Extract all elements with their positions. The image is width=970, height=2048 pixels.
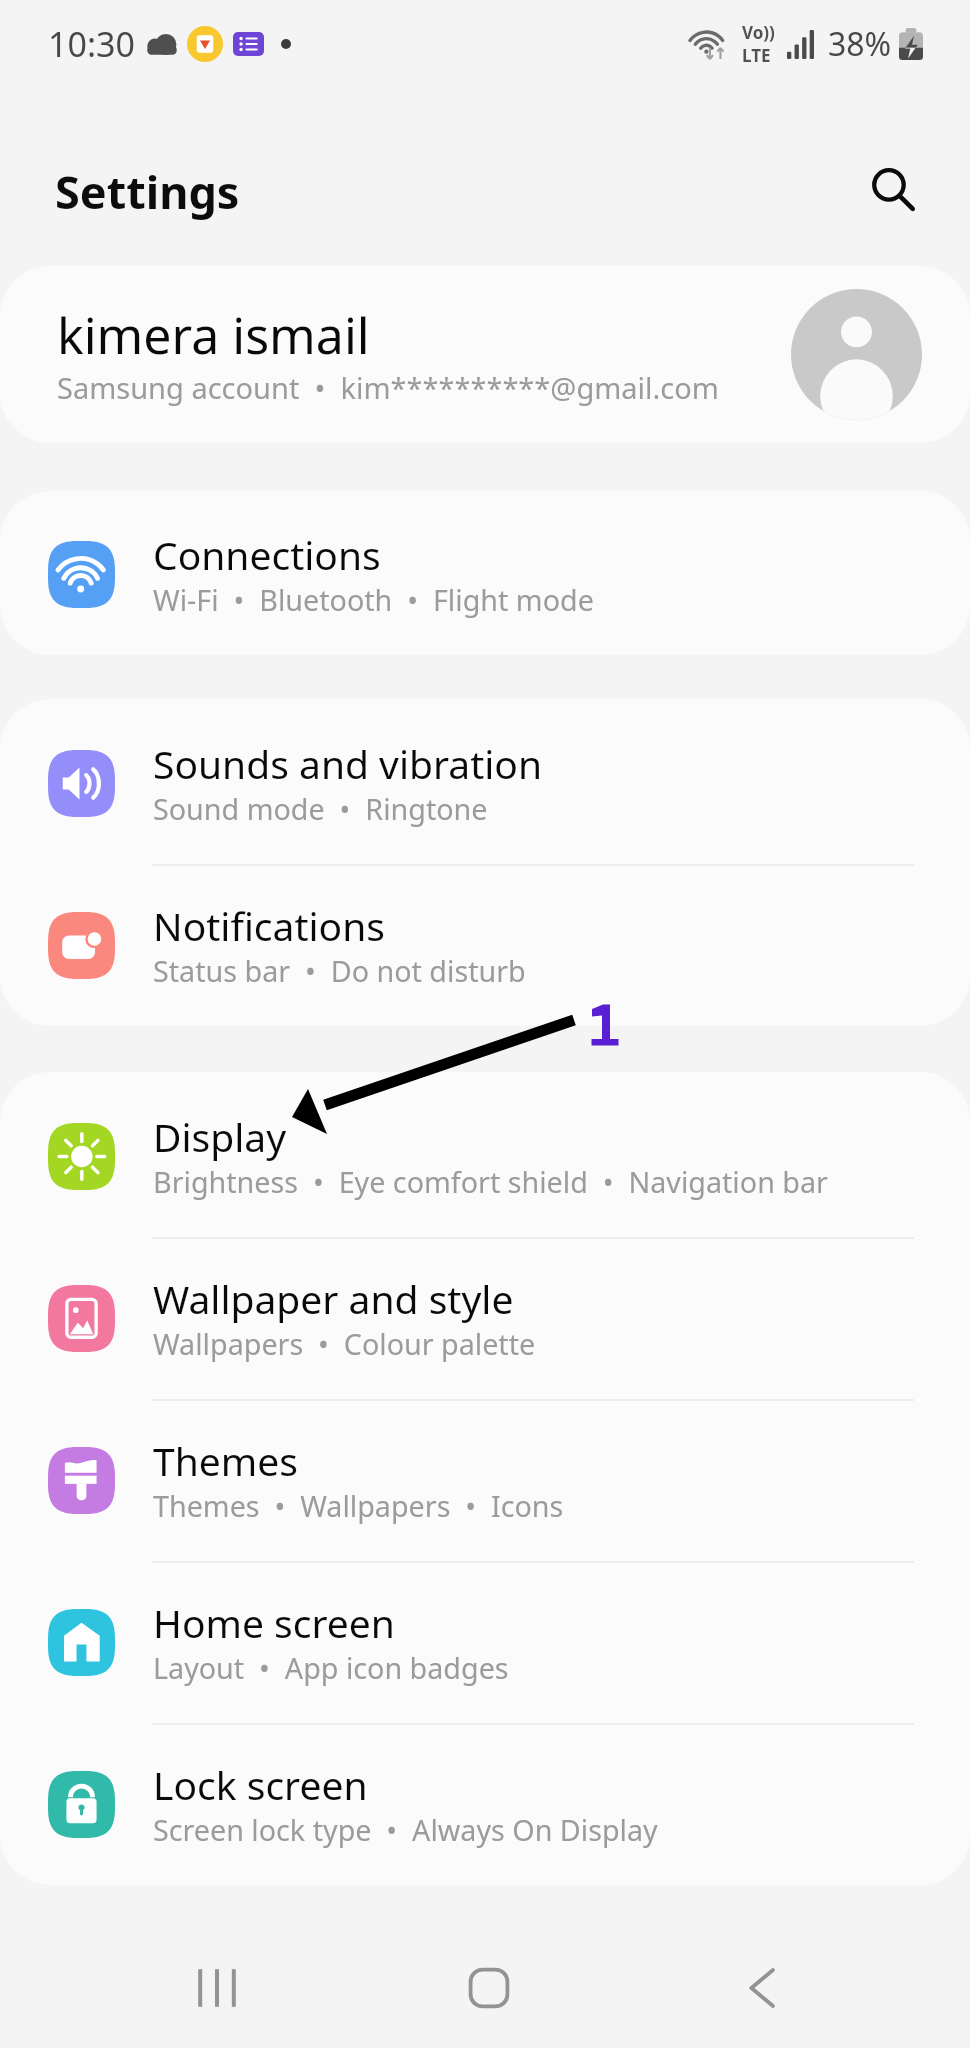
staticText: Connections: [153, 528, 381, 581]
staticText: Home screen: [153, 1596, 395, 1649]
staticText: kimera ismail: [57, 301, 370, 369]
button[interactable]: Connections: [0, 493, 970, 655]
staticText: Brightness • Eye comfort shield • Naviga…: [153, 1162, 828, 1201]
button[interactable]: Lock screen: [0, 1723, 970, 1885]
button[interactable]: Home: [409, 1949, 569, 2027]
button[interactable]: Themes: [0, 1399, 970, 1561]
staticText: 10:30: [48, 21, 135, 67]
staticText: Wi-Fi • Bluetooth • Flight mode: [153, 580, 594, 619]
button[interactable]: Notifications: [0, 864, 970, 1026]
staticText: Screen lock type • Always On Display: [153, 1810, 658, 1849]
staticText: Layout • App icon badges: [153, 1648, 509, 1687]
staticText: 38%: [828, 22, 892, 66]
staticText: Themes: [153, 1434, 298, 1487]
button[interactable]: Sounds and vibration: [0, 702, 970, 864]
staticText: Sound mode • Ringtone: [153, 789, 488, 828]
button[interactable]: Display: [0, 1075, 970, 1237]
button[interactable]: Wallpaper and style: [0, 1237, 970, 1399]
staticText: Lock screen: [153, 1758, 368, 1811]
staticText: Display: [153, 1110, 287, 1163]
button[interactable]: Search: [846, 143, 942, 239]
staticText: Settings: [55, 161, 240, 222]
staticText: Wallpaper and style: [153, 1272, 514, 1325]
button[interactable]: Back: [681, 1949, 841, 2027]
staticText: LTE: [742, 44, 771, 67]
staticText: Vo)): [742, 21, 775, 44]
button[interactable]: kimera ismail: [0, 266, 970, 443]
staticText: Sounds and vibration: [153, 737, 543, 790]
button[interactable]: Recent apps: [137, 1949, 297, 2027]
staticText: Notifications: [153, 899, 385, 952]
staticText: Themes • Wallpapers • Icons: [153, 1486, 564, 1525]
staticText: Status bar • Do not disturb: [153, 951, 526, 990]
button[interactable]: Home screen: [0, 1561, 970, 1723]
staticText: Samsung account • kim**********@gmail.co…: [57, 368, 719, 407]
staticText: Wallpapers • Colour palette: [153, 1324, 536, 1363]
